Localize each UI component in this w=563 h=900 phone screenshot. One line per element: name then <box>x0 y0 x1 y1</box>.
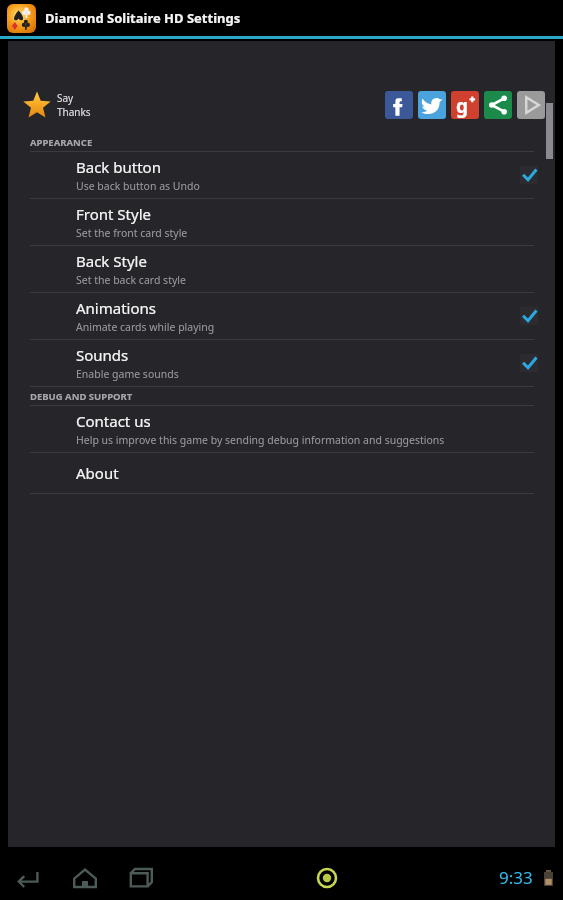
button[interactable]: Share <box>484 91 512 119</box>
staticText: Help us improve this game by sending deb… <box>76 433 445 447</box>
staticText: Say <box>57 91 74 105</box>
button[interactable]: Back button <box>8 152 555 199</box>
staticText: Contact us <box>76 411 151 431</box>
staticText: About <box>76 463 119 483</box>
staticText: Set the back card style <box>76 273 186 287</box>
button[interactable]: Google Play <box>517 91 545 119</box>
staticText: g <box>456 93 469 119</box>
staticText: Set the front card style <box>76 226 188 240</box>
staticText: Animations <box>76 298 156 318</box>
button[interactable]: Google Plus <box>451 91 479 119</box>
button[interactable]: Facebook <box>385 91 413 119</box>
button[interactable]: Front Style <box>8 199 555 246</box>
staticText: Front Style <box>76 204 151 224</box>
staticText: 9:33 <box>499 866 533 889</box>
staticText: Enable game sounds <box>76 367 179 381</box>
button[interactable]: Back <box>14 863 44 893</box>
button[interactable]: Back Style <box>8 246 555 293</box>
button[interactable]: Home <box>70 863 100 893</box>
staticText: Sounds <box>76 345 129 365</box>
staticText: Thanks <box>57 105 91 119</box>
button[interactable]: Animations <box>8 293 555 340</box>
button[interactable]: Twitter <box>418 91 446 119</box>
staticText: Back button <box>76 157 161 177</box>
staticText: DEBUG AND SUPPORT <box>30 390 133 403</box>
button[interactable]: Contact us <box>8 406 555 453</box>
staticText: Diamond Solitaire HD Settings <box>45 9 241 27</box>
button[interactable]: About <box>8 453 555 494</box>
staticText: Back Style <box>76 251 147 271</box>
staticText: Animate cards while playing <box>76 320 215 334</box>
button[interactable]: Recents <box>126 863 156 893</box>
button[interactable]: Sounds <box>8 340 555 387</box>
staticText: Use back button as Undo <box>76 179 200 193</box>
button[interactable]: Say <box>22 90 91 120</box>
staticText: APPEARANCE <box>30 136 93 149</box>
button[interactable]: Screenshot <box>312 863 342 893</box>
